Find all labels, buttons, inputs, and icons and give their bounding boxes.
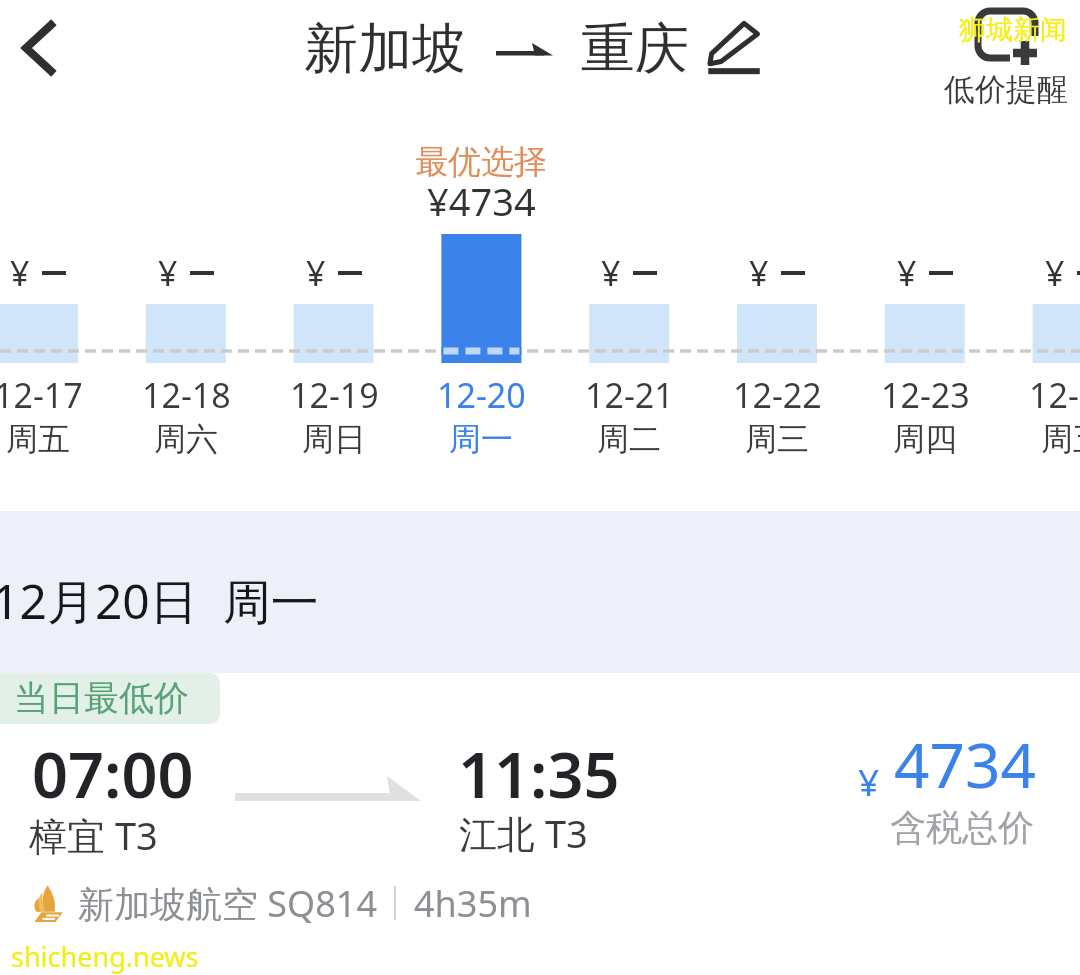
staticText: ¥ (897, 250, 917, 296)
staticText: 11:35 (458, 731, 620, 817)
staticText: 07:00 (32, 731, 194, 817)
staticText: 周五 (1041, 419, 1080, 459)
staticText: 周四 (893, 419, 957, 459)
staticText: 含税总价 (890, 805, 1034, 850)
button[interactable]: ¥ (851, 0, 999, 470)
button[interactable]: 新加坡 (290, 8, 780, 90)
staticText: 新加坡航空 SQ814 (78, 879, 378, 927)
staticText: 江北 T3 (459, 807, 588, 859)
button[interactable]: Price alert (936, 0, 1080, 110)
staticText: ¥ (749, 250, 769, 296)
staticText: 12-20 (437, 372, 526, 418)
staticText: ¥ (10, 250, 30, 296)
staticText: 狮城新闻 (959, 13, 1067, 47)
staticText: 周三 (745, 419, 809, 459)
staticText: ¥ (158, 250, 178, 296)
button[interactable]: ¥ (112, 0, 260, 470)
staticText: 周二 (597, 419, 661, 459)
staticText: 周一 (449, 419, 513, 459)
button[interactable]: ¥ (999, 0, 1080, 470)
button[interactable]: ¥ (555, 0, 703, 470)
staticText: 当日最低价 (14, 676, 189, 720)
staticText: 12-23 (881, 372, 970, 418)
staticText: 周五 (6, 419, 70, 459)
staticText: ¥ (1045, 250, 1065, 296)
staticText: 12-17 (0, 372, 83, 418)
button[interactable] (0, 724, 1080, 950)
staticText: 樟宜 T3 (29, 809, 158, 861)
button[interactable]: 最优选择 (407, 0, 555, 470)
staticText: 12-24 (1029, 372, 1080, 418)
staticText: 12-21 (585, 372, 674, 418)
other: Price alert (974, 8, 1046, 64)
staticText: ¥ (601, 250, 621, 296)
staticText: 最优选择 (415, 141, 547, 183)
staticText: ¥4734 (427, 175, 536, 227)
staticText: ¥ (306, 250, 326, 296)
staticText: 4734 (894, 722, 1036, 806)
button[interactable]: ¥ (260, 0, 408, 470)
staticText: shicheng.news (11, 938, 199, 975)
button[interactable]: Back (0, 12, 76, 84)
button[interactable]: ¥ (0, 0, 112, 470)
staticText: 新加坡 (304, 15, 466, 83)
staticText: 12-18 (142, 372, 231, 418)
staticText: 4h35m (414, 879, 532, 927)
staticText: 12月20日 周一 (0, 568, 319, 634)
staticText: ¥ (858, 756, 880, 806)
staticText: 12-19 (290, 372, 379, 418)
staticText: 周日 (302, 419, 366, 459)
staticText: 周六 (154, 419, 218, 459)
button[interactable]: ¥ (703, 0, 851, 470)
staticText: 12-22 (733, 372, 822, 418)
staticText: 重庆 (581, 15, 689, 83)
staticText: 低价提醒 (944, 70, 1068, 109)
